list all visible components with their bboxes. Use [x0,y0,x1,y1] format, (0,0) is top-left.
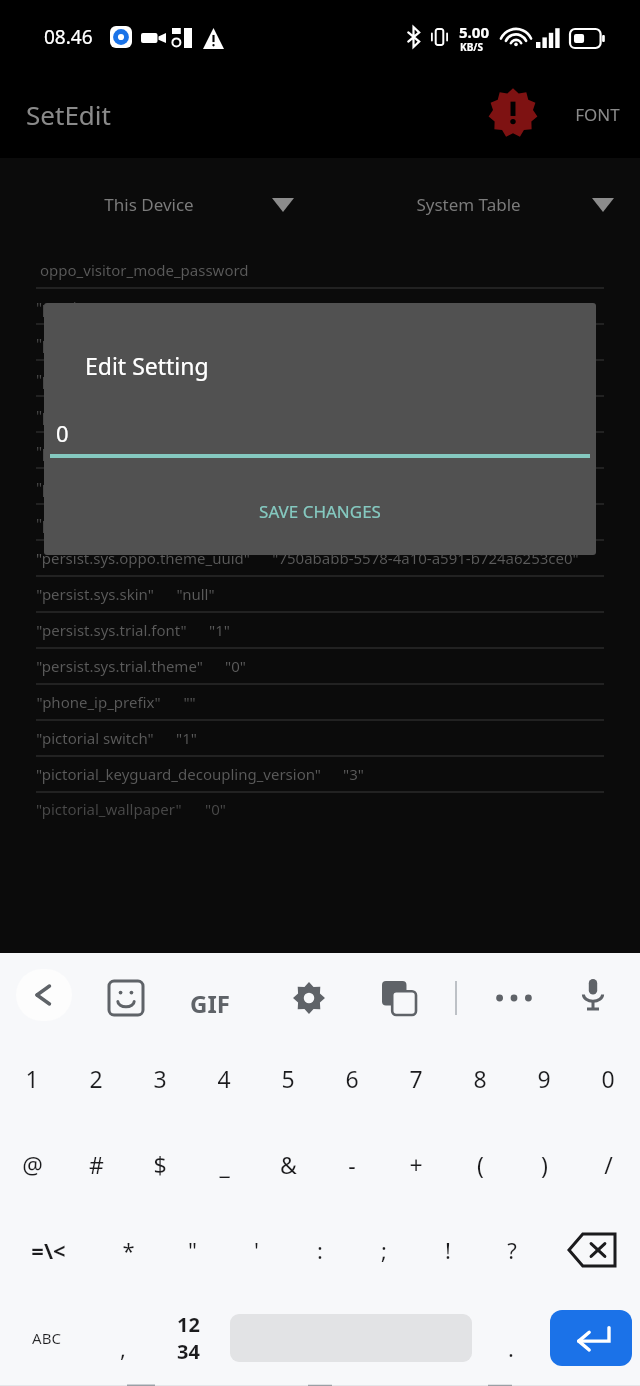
button[interactable]: ; [352,1207,416,1293]
button[interactable]: ' [224,1207,288,1293]
staticText: ! [445,1235,451,1265]
button[interactable]: Space [222,1295,480,1381]
button[interactable]: System Table [320,193,640,216]
button[interactable]: & [256,1121,320,1207]
staticText: 34 [177,1338,200,1365]
button[interactable]: # [64,1121,128,1207]
staticText: 5.00 [459,22,489,42]
staticText: @ [22,1149,43,1180]
staticText: . [508,1333,514,1363]
staticText: 1 [25,1063,39,1094]
button[interactable]: 6 [320,1035,384,1121]
button[interactable]: 9 [512,1035,576,1121]
button[interactable]: 1 [0,1035,64,1121]
staticText: SetEdit [26,97,111,132]
button[interactable]: More options [490,981,538,1015]
button[interactable]: FONT [569,97,626,132]
button[interactable]: - [320,1121,384,1207]
staticText: ( [477,1149,484,1180]
button[interactable]: . [480,1295,542,1381]
button[interactable]: ABC [0,1295,92,1381]
button[interactable]: Voice input [572,973,614,1015]
staticText: 9 [537,1063,551,1094]
staticText: 0 [56,418,69,448]
staticText: / [604,1149,613,1180]
staticText: 6 [345,1063,359,1094]
button[interactable]: _ [192,1121,256,1207]
staticText: 7 [409,1063,423,1094]
button[interactable]: ? [480,1207,544,1293]
staticText: 8 [473,1063,487,1094]
staticText: & [280,1149,297,1180]
staticText: + [409,1149,423,1180]
button[interactable]: SAVE CHANGES [241,492,399,531]
button[interactable]: 5 [256,1035,320,1121]
button[interactable]: 12 [154,1295,222,1381]
button[interactable]: Settings [288,977,330,1019]
button[interactable]: 3 [128,1035,192,1121]
staticText: oppo_visitor_mode_password [40,260,249,280]
button[interactable]: ) [512,1121,576,1207]
staticText: "3" [343,764,364,784]
staticText: , [120,1333,126,1363]
staticText: "persist.sys.xxx" "0" [36,297,190,317]
button[interactable]: Enter [542,1295,640,1381]
staticText: "persist.sys.xxx" "0" [36,369,190,389]
button[interactable]: Backspace [544,1207,640,1293]
staticText: 2 [89,1063,103,1094]
staticText: ) [541,1149,548,1180]
staticText: "persist.sys.xxx" "0" [36,477,190,497]
button[interactable]: ! [416,1207,480,1293]
staticText: This Device [104,193,194,216]
button[interactable]: Translate [378,977,420,1019]
staticText: "persist.sys.xxx" "0" [36,333,190,353]
staticText: SAVE CHANGES [259,500,381,523]
staticText: GIF [190,987,230,1020]
staticText: "persist.sys.trial.font" [36,620,187,640]
button[interactable]: "persist.sys.trial.theme" [0,649,640,684]
button[interactable]: Back [16,969,72,1021]
button[interactable]: : [288,1207,352,1293]
button[interactable]: GIF [186,983,234,1024]
staticText: $ [153,1149,167,1180]
button[interactable]: =\< [0,1207,96,1293]
staticText: ' [254,1235,259,1265]
staticText: FONT [575,103,620,126]
button[interactable]: This Device [0,193,320,216]
button[interactable]: SetEdit [20,91,117,138]
button[interactable]: 8 [448,1035,512,1121]
staticText: "750ababb-5578-4a10-a591-b724a6253ce0" [272,548,579,568]
staticText: - [348,1149,356,1180]
staticText: : [317,1235,323,1265]
button[interactable]: , [92,1295,154,1381]
staticText: "persist.sys.oppo.theme_uuid" [36,548,250,568]
button[interactable]: " [160,1207,224,1293]
staticText: "" [183,692,196,712]
button[interactable]: 4 [192,1035,256,1121]
button[interactable]: "persist.sys.oppo.theme_uuid" [0,541,640,576]
staticText: 3 [153,1063,167,1094]
button[interactable]: "pictorial switch" [0,721,640,756]
button[interactable]: ( [448,1121,512,1207]
button[interactable]: * [96,1207,160,1293]
button[interactable]: / [576,1121,640,1207]
staticText: KB/S [460,40,483,54]
staticText: # [89,1149,104,1180]
button[interactable]: @ [0,1121,64,1207]
button[interactable]: 7 [384,1035,448,1121]
staticText: "phone_ip_prefix" [36,692,161,712]
button[interactable]: "persist.sys.trial.font" [0,613,640,648]
button[interactable]: $ [128,1121,192,1207]
staticText: ? [507,1235,517,1265]
button[interactable]: + [384,1121,448,1207]
staticText: "persist.sys.xxx" "0" [36,513,190,533]
button[interactable]: 2 [64,1035,128,1121]
button[interactable]: Stickers [105,977,147,1019]
button[interactable]: Warning [485,85,541,141]
staticText: * [122,1235,135,1265]
button[interactable]: 0 [576,1035,640,1121]
staticText: "persist.sys.xxx" "0" [36,441,190,461]
button[interactable]: "phone_ip_prefix" [0,685,640,720]
button[interactable]: "persist.sys.skin" [0,577,640,612]
button[interactable]: "pictorial_keyguard_decoupling_version" [0,757,640,792]
